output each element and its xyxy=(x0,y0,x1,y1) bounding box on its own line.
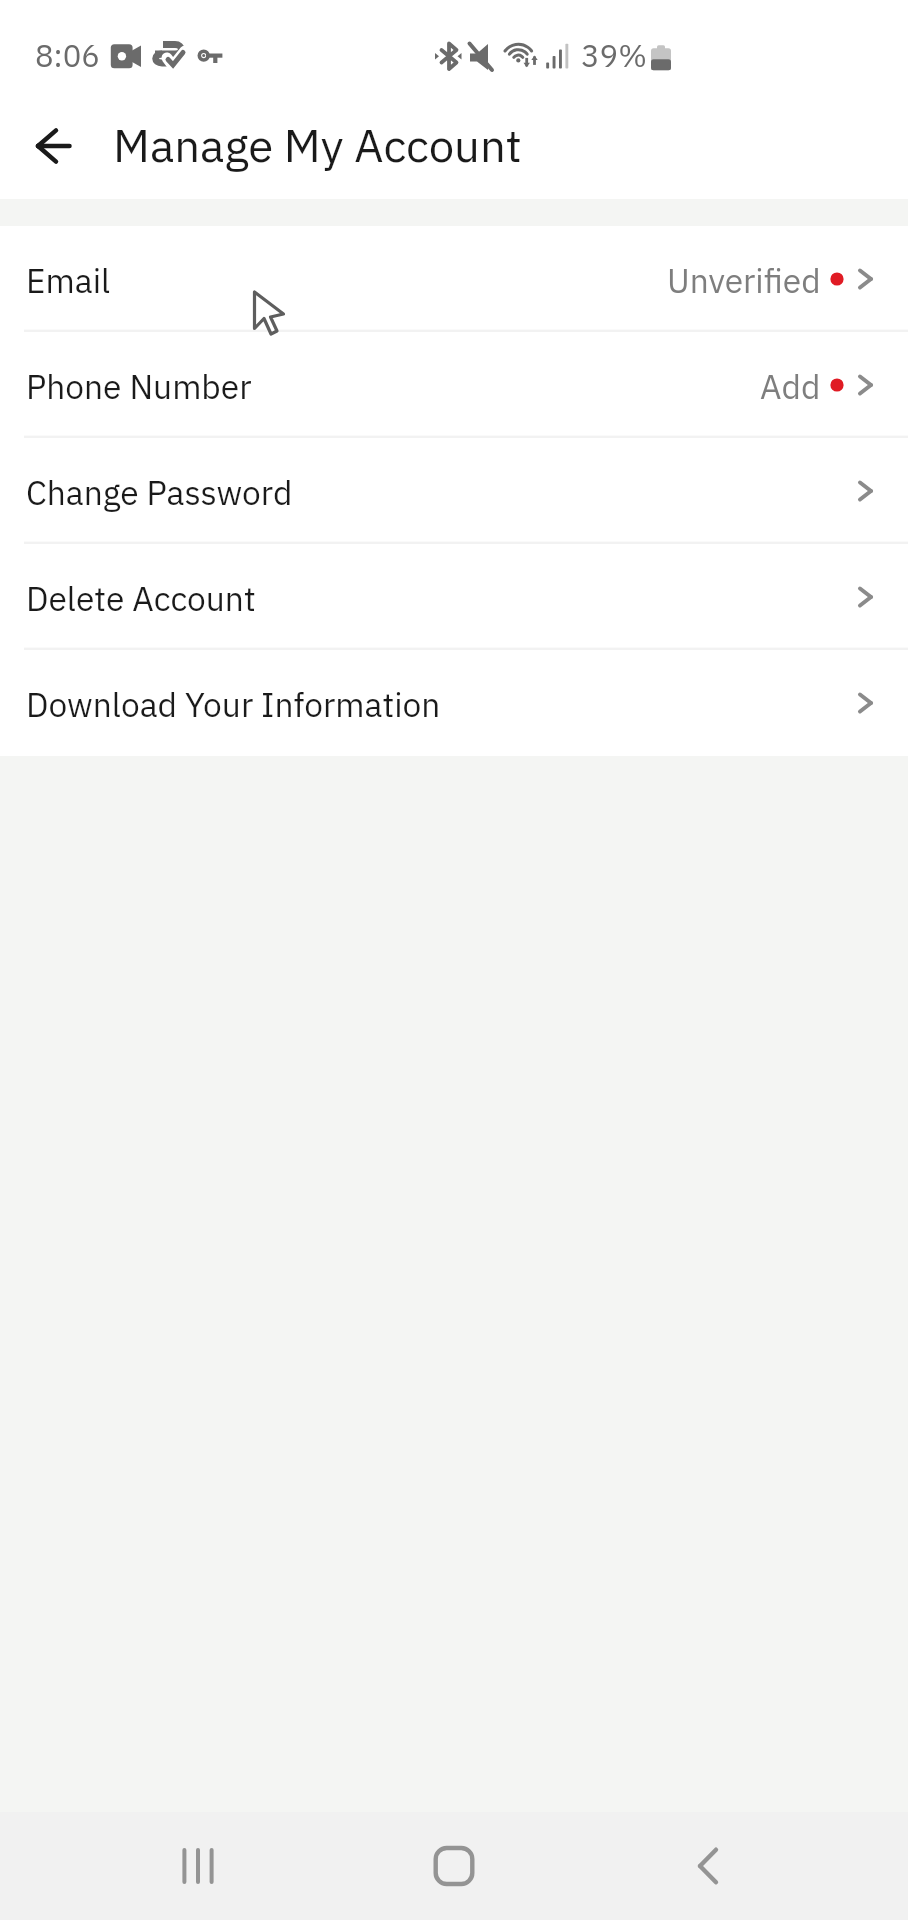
button[interactable]: Download Your Information xyxy=(0,650,908,756)
staticText: 39% xyxy=(581,35,647,75)
button[interactable]: Back xyxy=(15,109,89,183)
button[interactable]: Back xyxy=(664,1822,752,1910)
button[interactable]: Change Password xyxy=(0,438,908,544)
button[interactable]: Delete Account xyxy=(0,544,908,650)
staticText: Unverified xyxy=(667,259,821,303)
staticText: Add xyxy=(760,365,821,409)
staticText: Change Password xyxy=(26,471,293,515)
staticText: Delete Account xyxy=(26,577,256,621)
staticText: Download Your Information xyxy=(26,683,441,727)
staticText: Email xyxy=(26,259,111,303)
button[interactable]: Home xyxy=(410,1822,498,1910)
button[interactable]: Email xyxy=(0,226,908,332)
button[interactable]: Phone Number xyxy=(0,332,908,438)
button[interactable]: Recent apps xyxy=(154,1822,242,1910)
staticText: 8:06 xyxy=(35,35,100,75)
staticText: Manage My Account xyxy=(113,115,522,174)
staticText: Phone Number xyxy=(26,365,252,409)
